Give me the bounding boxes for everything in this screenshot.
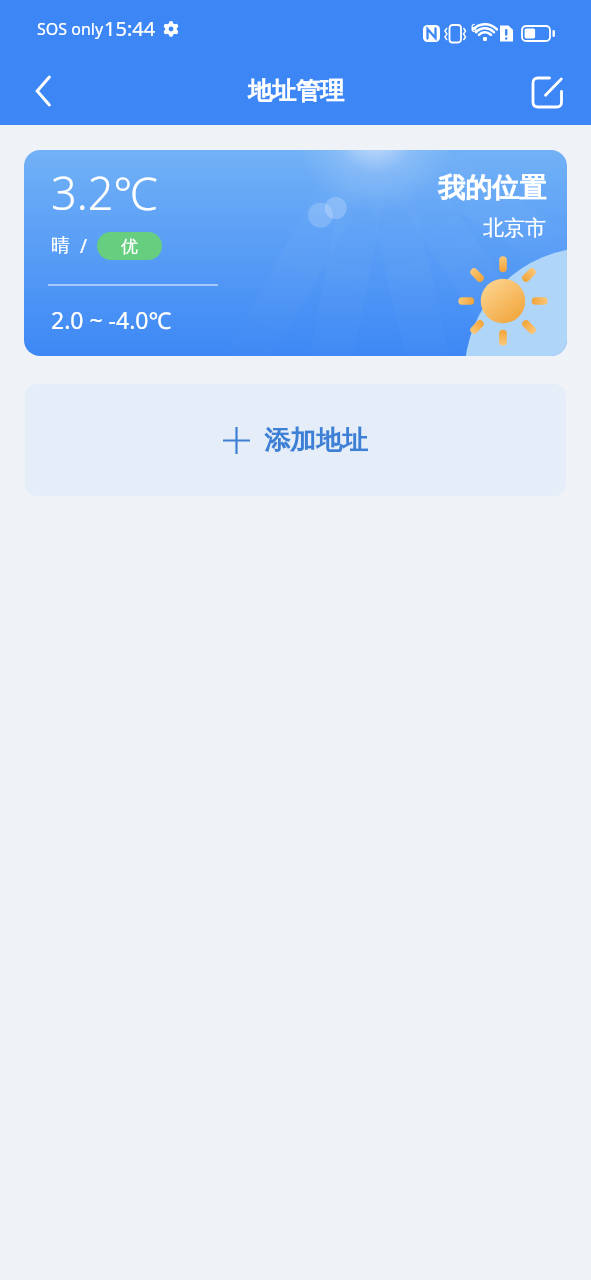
staticText: 3.2℃ [51, 162, 158, 223]
staticText: 地址管理 [248, 76, 344, 106]
staticText: 北京市 [483, 215, 546, 241]
button[interactable]: Back [17, 65, 69, 117]
staticText: 晴 [51, 234, 70, 258]
button[interactable]: 3.2℃ [24, 150, 567, 356]
staticText: 添加地址 [264, 424, 368, 457]
staticText: 2.0 ~ -4.0℃ [51, 304, 172, 335]
staticText: 优 [121, 236, 138, 257]
staticText: / [80, 233, 88, 259]
staticText: 我的位置 [438, 171, 546, 205]
staticText: 15:44 [104, 15, 156, 42]
staticText: SOS only [37, 18, 104, 40]
button[interactable]: 添加地址 [25, 384, 566, 496]
button[interactable]: Edit [521, 65, 573, 117]
